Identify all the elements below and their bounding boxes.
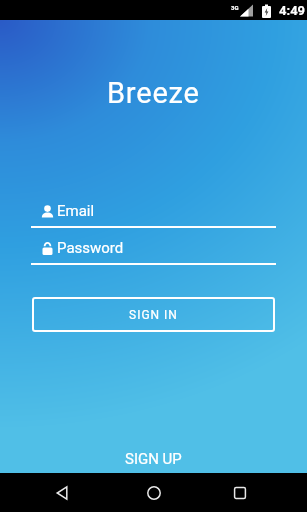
button[interactable] [48,479,76,507]
staticText: Password [57,239,124,257]
button[interactable]: Email [31,200,276,228]
button[interactable] [226,479,254,507]
button[interactable]: Password [31,237,276,265]
button[interactable]: SIGN UP [125,450,182,468]
staticText: Email [57,202,95,220]
staticText: SIGN UP [125,450,182,468]
staticText: SIGN IN [129,308,178,322]
staticText: Breeze [107,76,200,110]
staticText: 3G [231,4,239,11]
staticText: 4:49 [279,3,306,18]
button[interactable]: SIGN IN [32,297,275,332]
button[interactable] [140,479,168,507]
